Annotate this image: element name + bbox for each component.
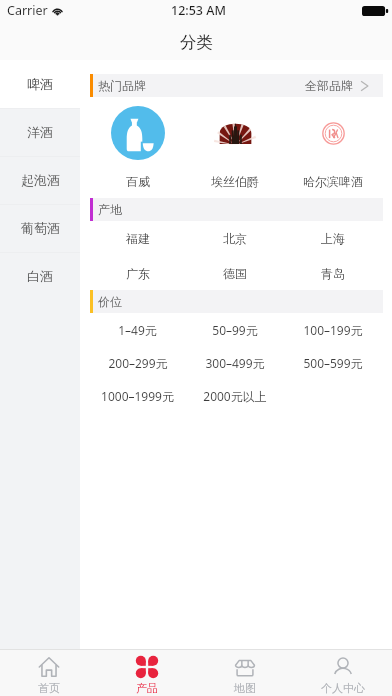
staticText: 产地 bbox=[98, 202, 122, 217]
staticText: 500–599元 bbox=[303, 355, 363, 371]
staticText: 300–499元 bbox=[205, 355, 265, 371]
button[interactable]: 200–299元 bbox=[89, 346, 186, 379]
staticText: 产品 bbox=[136, 681, 158, 695]
staticText: 百威 bbox=[126, 174, 150, 189]
staticText: 全部品牌 bbox=[305, 78, 353, 93]
button[interactable]: 北京 bbox=[186, 221, 284, 256]
staticText: 12:53 AM bbox=[171, 2, 226, 19]
button[interactable]: 福建 bbox=[89, 221, 186, 256]
button[interactable]: 啤酒 bbox=[0, 60, 80, 108]
staticText: 200–299元 bbox=[108, 355, 168, 371]
button[interactable]: 青岛 bbox=[284, 256, 382, 290]
button[interactable]: 上海 bbox=[284, 221, 382, 256]
staticText: 2000元以上 bbox=[203, 388, 267, 404]
button[interactable]: 1000–1999元 bbox=[89, 379, 186, 412]
button[interactable]: 首页 bbox=[0, 650, 98, 696]
button[interactable]: 个人中心 bbox=[294, 650, 392, 696]
button[interactable]: 广东 bbox=[89, 256, 186, 290]
button[interactable]: 50–99元 bbox=[186, 313, 284, 346]
staticText: 德国 bbox=[223, 266, 247, 281]
staticText: 洋酒 bbox=[27, 124, 53, 140]
button[interactable]: 2000元以上 bbox=[186, 379, 284, 412]
staticText: 100–199元 bbox=[303, 322, 363, 338]
staticText: 起泡酒 bbox=[21, 172, 60, 188]
staticText: 青岛 bbox=[321, 266, 345, 281]
staticText: 福建 bbox=[126, 231, 150, 246]
staticText: 葡萄酒 bbox=[21, 220, 60, 236]
staticText: 白酒 bbox=[27, 268, 53, 284]
staticText: 地图 bbox=[234, 681, 256, 695]
button[interactable]: 产品 bbox=[98, 650, 196, 696]
button[interactable]: 白酒 bbox=[0, 252, 80, 300]
staticText: 1000–1999元 bbox=[101, 388, 174, 404]
staticText: 广东 bbox=[126, 266, 150, 281]
staticText: 1–49元 bbox=[118, 322, 157, 338]
staticText: Carrier bbox=[7, 2, 48, 19]
button[interactable]: 全部品牌 bbox=[305, 74, 392, 97]
staticText: 50–99元 bbox=[212, 322, 258, 338]
button[interactable]: 德国 bbox=[186, 256, 284, 290]
staticText: 哈尔滨啤酒 bbox=[303, 174, 363, 189]
button[interactable]: 300–499元 bbox=[186, 346, 284, 379]
staticText: 埃丝伯爵 bbox=[211, 174, 259, 189]
staticText: 北京 bbox=[223, 231, 247, 246]
staticText: 首页 bbox=[38, 681, 60, 695]
button[interactable]: 1–49元 bbox=[89, 313, 186, 346]
staticText: 个人中心 bbox=[321, 681, 365, 695]
button[interactable]: 100–199元 bbox=[284, 313, 382, 346]
button[interactable]: 葡萄酒 bbox=[0, 204, 80, 252]
staticText: 价位 bbox=[98, 294, 122, 309]
button[interactable]: 哈尔滨啤酒 bbox=[284, 97, 382, 198]
button[interactable]: 埃丝伯爵 bbox=[186, 97, 284, 198]
staticText: 分类 bbox=[180, 32, 213, 53]
button[interactable]: 洋酒 bbox=[0, 108, 80, 156]
button[interactable]: 500–599元 bbox=[284, 346, 382, 379]
staticText: 上海 bbox=[321, 231, 345, 246]
staticText: 热门品牌 bbox=[98, 78, 146, 93]
staticText: 啤酒 bbox=[27, 76, 53, 92]
button[interactable]: 百威 bbox=[89, 97, 186, 198]
button[interactable]: 起泡酒 bbox=[0, 156, 80, 204]
button[interactable]: 地图 bbox=[196, 650, 294, 696]
